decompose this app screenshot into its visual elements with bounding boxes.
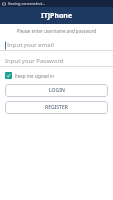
button[interactable]: REGISTER [5, 101, 108, 114]
button[interactable]: Keep me signed in [5, 72, 113, 79]
staticText: LOGIN [49, 87, 65, 94]
other: Screenshot notification [2, 2, 6, 6]
staticText: Input your email [7, 41, 54, 49]
staticText: Please enter username and password [0, 28, 113, 34]
button[interactable]: Input your Password [0, 56, 113, 67]
staticText: ITJPhone [41, 11, 73, 21]
staticText: Input your Password [5, 57, 64, 65]
staticText: Keep me signed in [15, 73, 54, 79]
button[interactable]: Input your email [0, 40, 113, 51]
button[interactable]: LOGIN [5, 84, 108, 97]
staticText: REGISTER [45, 104, 68, 111]
staticText: Saving screenshot... [8, 1, 46, 6]
